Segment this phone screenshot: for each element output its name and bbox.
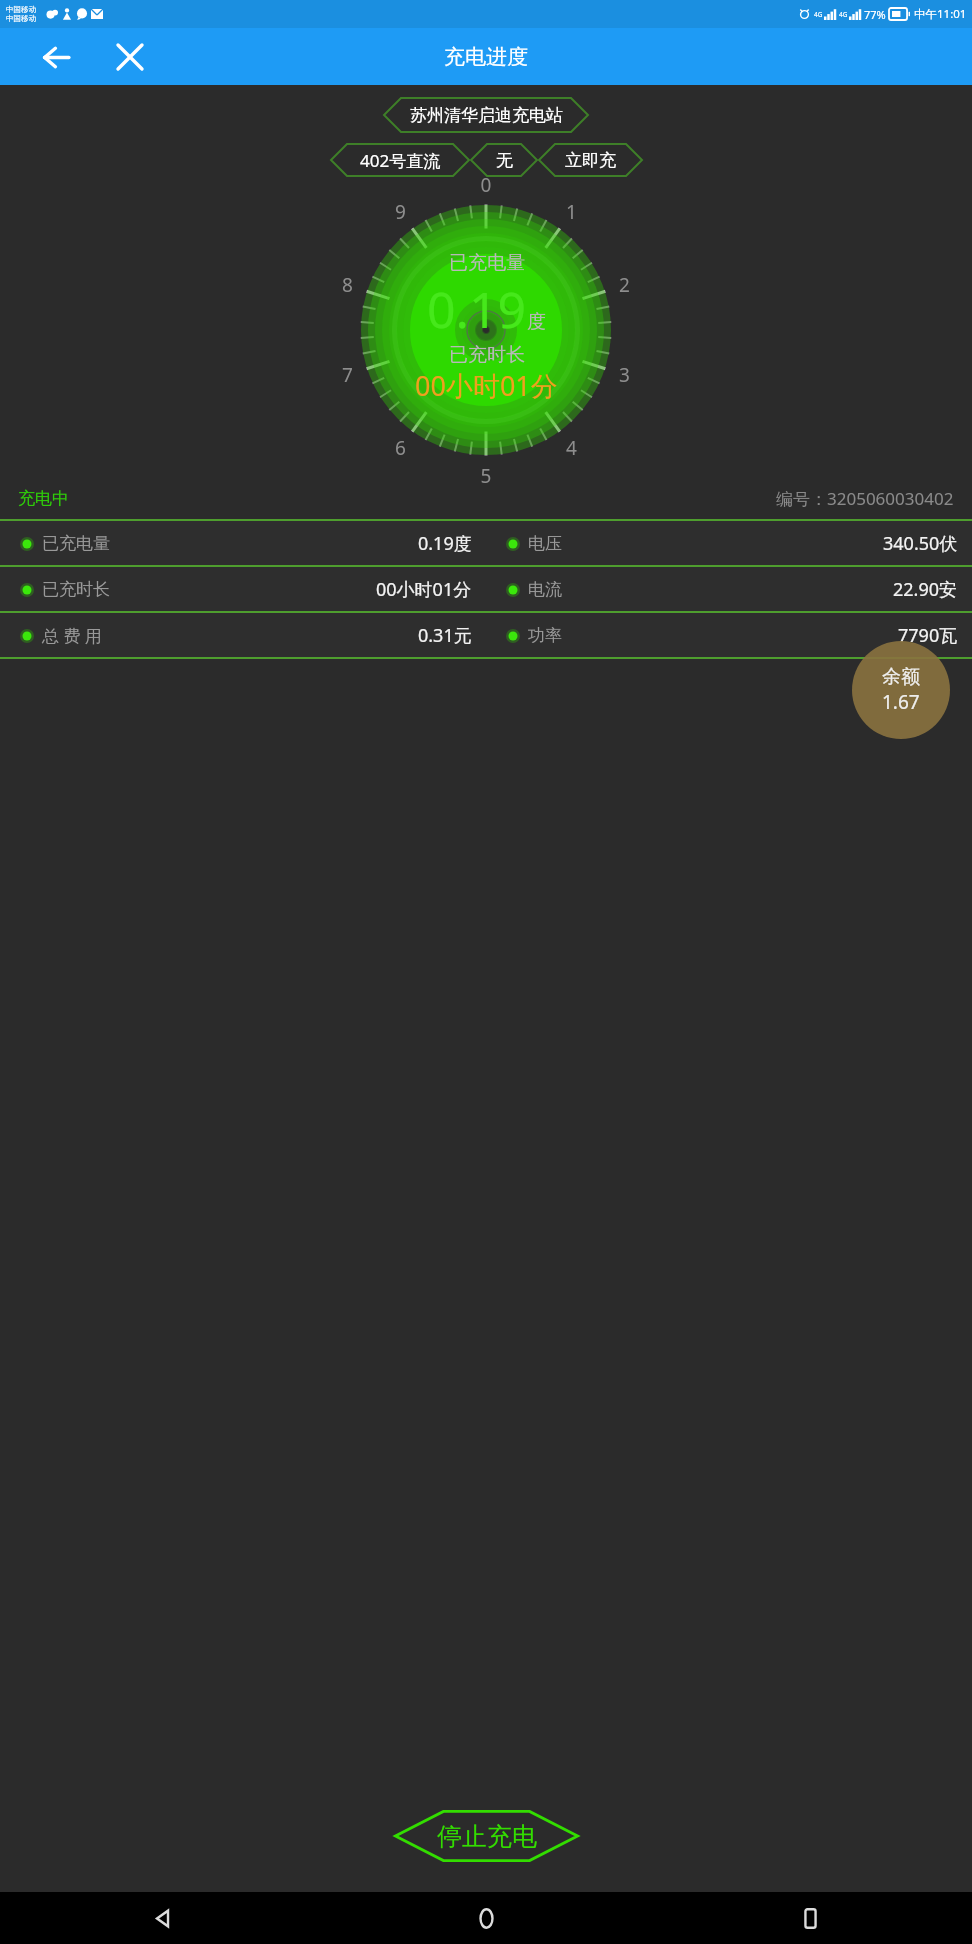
staticText: 总 费 用: [42, 624, 102, 647]
staticText: 电流: [528, 579, 562, 600]
staticText: 402号直流: [360, 149, 441, 172]
button[interactable]: Close: [108, 35, 152, 79]
staticText: 充电中: [18, 488, 69, 509]
staticText: 已充时长: [42, 579, 110, 600]
staticText: 340.50伏: [883, 531, 958, 556]
button[interactable]: 苏州清华启迪充电站: [383, 97, 589, 133]
button[interactable]: 总 费 用: [0, 613, 972, 657]
staticText: 电压: [528, 533, 562, 554]
staticText: 中国移动: [6, 5, 36, 14]
staticText: 已充时长: [449, 343, 525, 367]
staticText: 22.90安: [893, 577, 958, 602]
staticText: 度: [527, 310, 546, 334]
button[interactable]: Back: [0, 1892, 324, 1944]
staticText: 中午11:01: [914, 6, 967, 22]
staticText: 已充电量: [42, 533, 110, 554]
staticText: 4G: [814, 10, 823, 19]
button[interactable]: Recents: [648, 1892, 972, 1944]
staticText: 00小时01分: [415, 367, 558, 404]
button[interactable]: 立即充: [538, 143, 643, 177]
button[interactable]: 已充电量: [0, 521, 972, 565]
staticText: 1.67: [882, 689, 920, 715]
staticText: 00小时01分: [376, 577, 472, 602]
staticText: 4G: [839, 10, 848, 19]
staticText: 0.31元: [418, 623, 472, 648]
button[interactable]: Back: [34, 35, 78, 79]
staticText: 77%: [864, 7, 886, 22]
button[interactable]: Home: [324, 1892, 648, 1944]
staticText: 已充电量: [449, 251, 525, 275]
button[interactable]: 402号直流: [330, 143, 470, 177]
staticText: 立即充: [565, 150, 616, 171]
staticText: 编号：3205060030402: [776, 487, 954, 510]
button[interactable]: 余额: [852, 641, 950, 739]
staticText: 无: [496, 150, 513, 171]
staticText: 中国移动: [6, 14, 36, 23]
staticText: 0.19度: [418, 531, 472, 556]
staticText: 苏州清华启迪充电站: [410, 105, 563, 126]
staticText: 充电进度: [444, 44, 528, 70]
staticText: 余额: [882, 665, 920, 689]
button[interactable]: 无: [470, 143, 538, 177]
button[interactable]: 停止充电: [394, 1810, 579, 1862]
staticText: 功率: [528, 625, 562, 646]
button[interactable]: 已充时长: [0, 567, 972, 611]
staticText: 停止充电: [437, 1821, 537, 1852]
staticText: 0.19: [427, 275, 527, 343]
staticText: 7790瓦: [898, 623, 958, 648]
